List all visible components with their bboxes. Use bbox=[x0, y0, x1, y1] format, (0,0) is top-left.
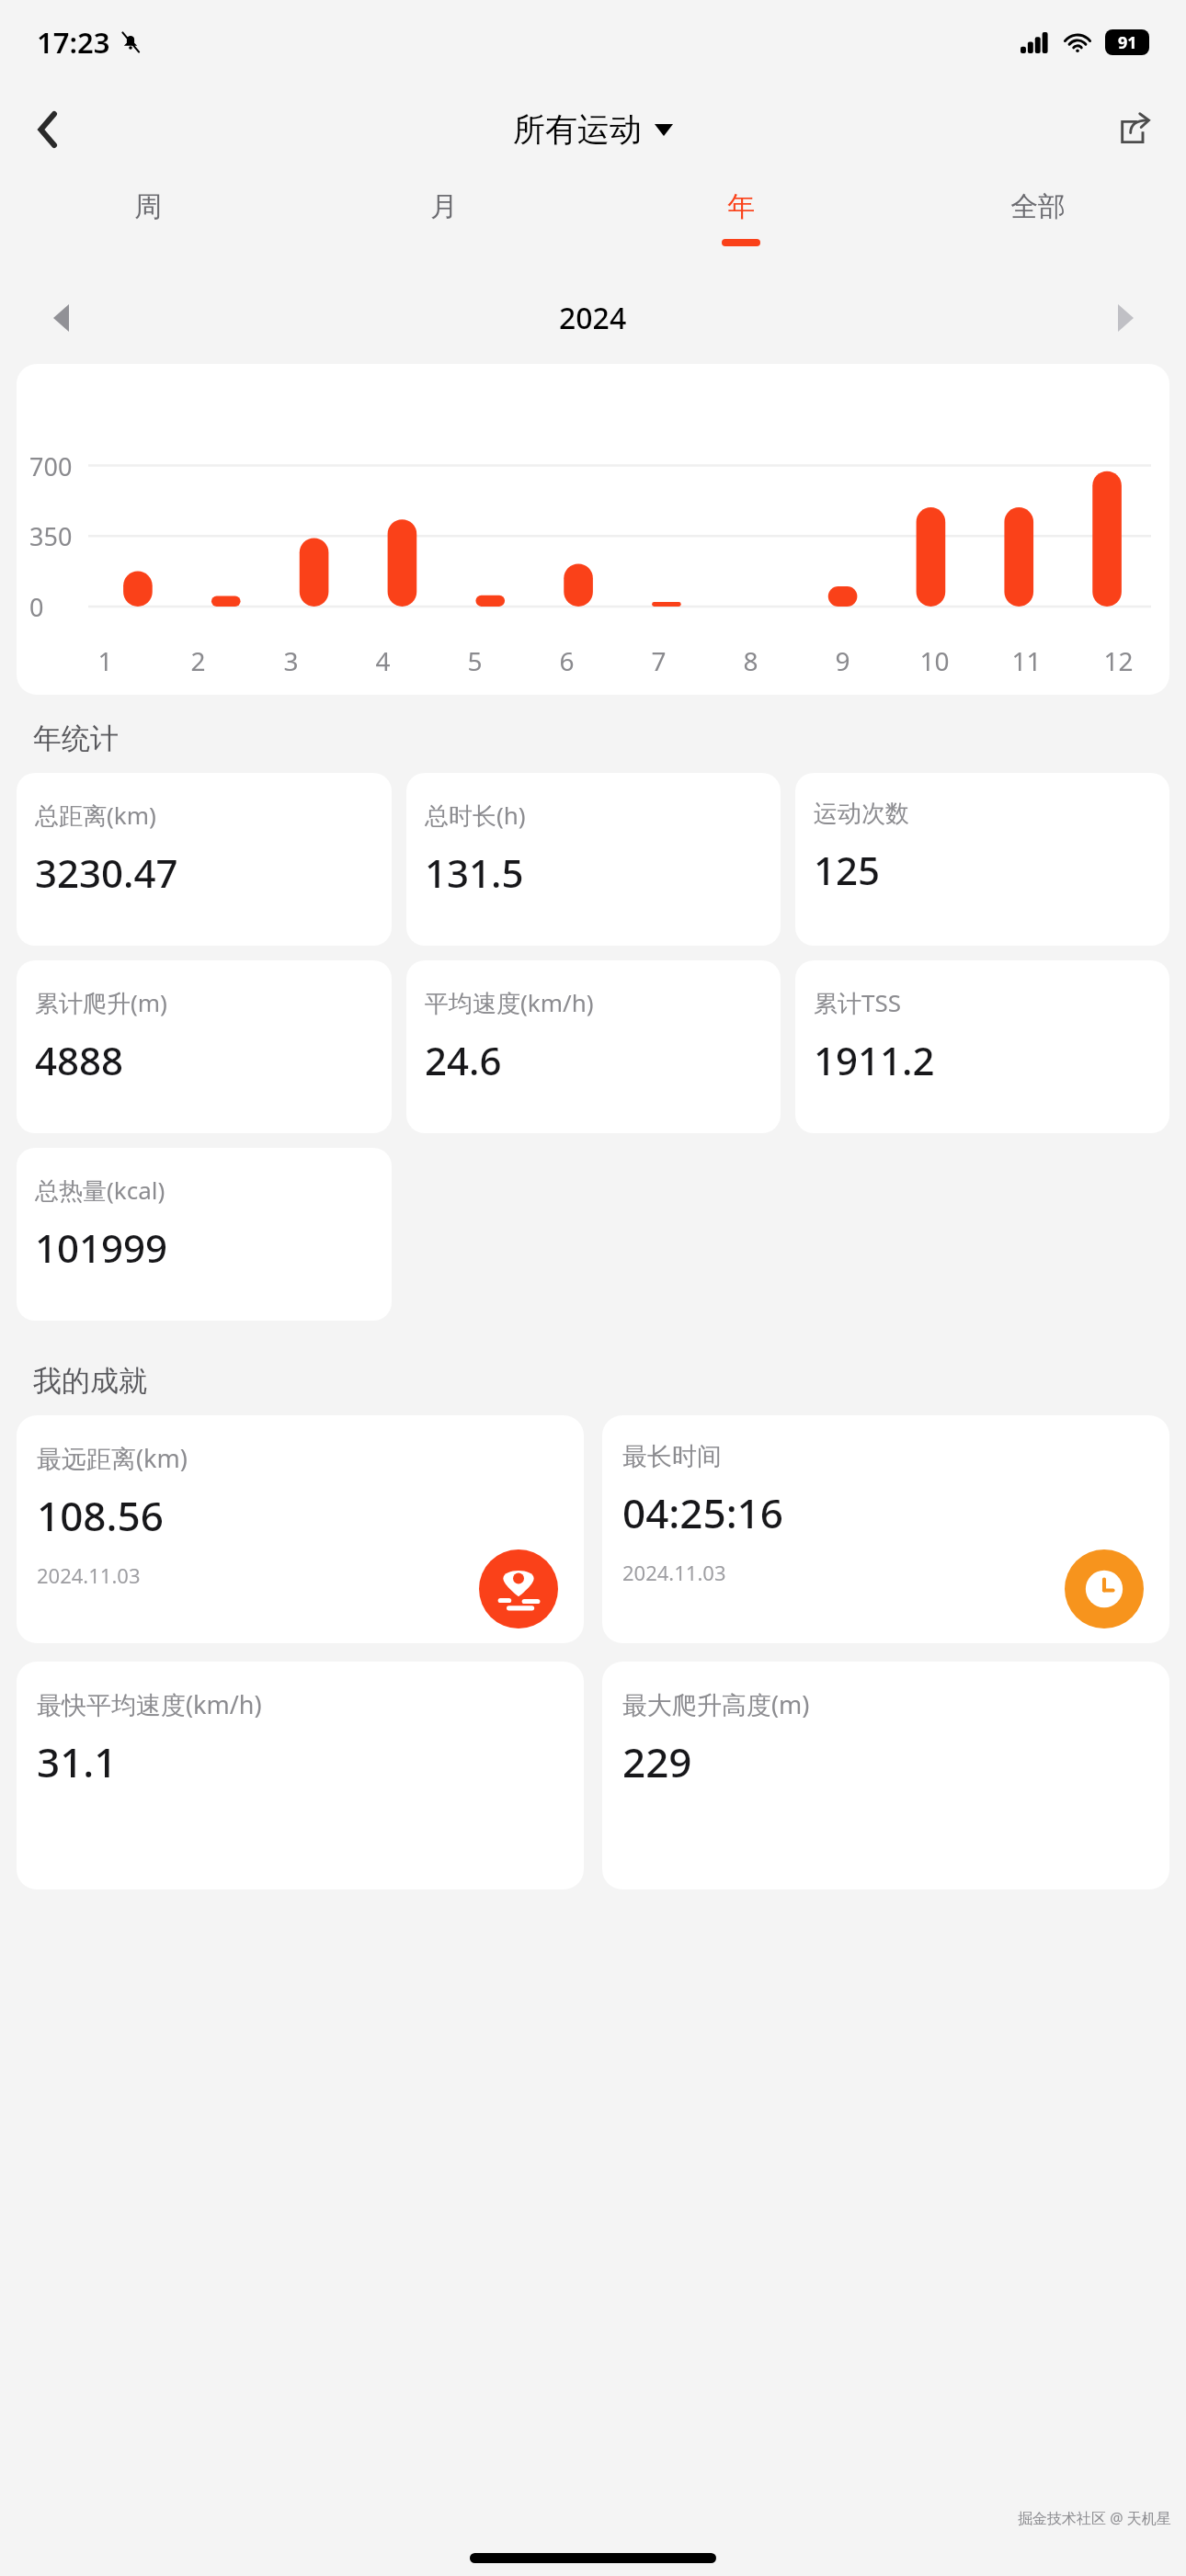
button[interactable]: 下一年 bbox=[1100, 292, 1151, 344]
staticText: 年 bbox=[727, 189, 755, 224]
button[interactable]: 最快平均速度(km/h) bbox=[17, 1662, 584, 1889]
button[interactable]: 最大爬升高度(m) bbox=[602, 1662, 1169, 1889]
staticText: 3 bbox=[283, 643, 299, 678]
staticText: 125 bbox=[814, 844, 881, 896]
staticText: 04:25:16 bbox=[622, 1485, 783, 1540]
staticText: 5 bbox=[467, 643, 483, 678]
button[interactable]: 总热量(kcal) bbox=[17, 1148, 392, 1321]
staticText: 31.1 bbox=[37, 1734, 118, 1789]
button[interactable]: 返回 bbox=[18, 100, 77, 159]
button[interactable]: 总时长(h) bbox=[406, 773, 781, 946]
staticText: 平均速度(km/h) bbox=[425, 986, 594, 1019]
button[interactable]: 最长时间 bbox=[602, 1415, 1169, 1643]
button[interactable]: 年 bbox=[592, 175, 889, 276]
staticText: 最大爬升高度(m) bbox=[622, 1687, 810, 1721]
staticText: 最快平均速度(km/h) bbox=[37, 1687, 262, 1721]
staticText: 7 bbox=[651, 643, 667, 678]
button[interactable]: 累计TSS bbox=[795, 960, 1169, 1133]
button[interactable]: 运动次数 bbox=[795, 773, 1169, 946]
staticText: 所有运动 bbox=[513, 109, 642, 150]
staticText: 最长时间 bbox=[622, 1441, 722, 1472]
button[interactable]: 分享 bbox=[1103, 98, 1166, 161]
staticText: 月 bbox=[430, 189, 458, 224]
staticText: 2 bbox=[190, 643, 206, 678]
staticText: 1911.2 bbox=[814, 1034, 935, 1086]
staticText: 101999 bbox=[35, 1221, 168, 1274]
staticText: 总距离(km) bbox=[35, 799, 156, 832]
button[interactable]: 平均速度(km/h) bbox=[406, 960, 781, 1133]
button[interactable]: 累计爬升(m) bbox=[17, 960, 392, 1133]
staticText: 0 bbox=[29, 590, 44, 624]
staticText: 4888 bbox=[35, 1034, 124, 1086]
staticText: 2024.11.03 bbox=[37, 1561, 141, 1589]
staticText: 累计爬升(m) bbox=[35, 986, 167, 1019]
staticText: 总时长(h) bbox=[425, 799, 526, 832]
button[interactable]: 上一年 bbox=[35, 292, 86, 344]
staticText: 131.5 bbox=[425, 846, 524, 899]
staticText: 91 bbox=[1118, 31, 1137, 54]
staticText: 3230.47 bbox=[35, 846, 178, 899]
staticText: 最远距离(km) bbox=[37, 1441, 188, 1475]
button[interactable]: 全部 bbox=[889, 175, 1186, 276]
staticText: 12 bbox=[1103, 643, 1134, 678]
staticText: 运动次数 bbox=[814, 799, 909, 829]
staticText: 8 bbox=[743, 643, 758, 678]
staticText: 全部 bbox=[1010, 189, 1066, 224]
button[interactable]: 最远距离(km) bbox=[17, 1415, 584, 1643]
staticText: 掘金技术社区 @ 天机星 bbox=[1018, 2508, 1171, 2528]
button[interactable]: 总距离(km) bbox=[17, 773, 392, 946]
staticText: 总热量(kcal) bbox=[35, 1174, 165, 1207]
staticText: 9 bbox=[835, 643, 850, 678]
staticText: 周 bbox=[134, 189, 162, 224]
staticText: 2024 bbox=[559, 298, 627, 338]
button[interactable]: 所有运动 bbox=[502, 102, 684, 157]
staticText: 6 bbox=[559, 643, 575, 678]
staticText: 2024.11.03 bbox=[622, 1559, 726, 1586]
staticText: 11 bbox=[1011, 643, 1042, 678]
staticText: 1 bbox=[97, 643, 113, 678]
staticText: 年统计 bbox=[33, 721, 119, 756]
staticText: 24.6 bbox=[425, 1034, 502, 1086]
staticText: 累计TSS bbox=[814, 986, 902, 1019]
staticText: 17:23 bbox=[37, 23, 110, 62]
staticText: 350 bbox=[29, 519, 73, 553]
staticText: 4 bbox=[375, 643, 391, 678]
staticText: 10 bbox=[919, 643, 950, 678]
staticText: 700 bbox=[29, 449, 73, 483]
staticText: 229 bbox=[622, 1734, 692, 1789]
staticText: 我的成就 bbox=[33, 1363, 147, 1399]
button[interactable]: 700 bbox=[17, 364, 1169, 695]
button[interactable]: 周 bbox=[0, 175, 296, 276]
button[interactable]: 月 bbox=[296, 175, 592, 276]
staticText: 108.56 bbox=[37, 1488, 164, 1543]
